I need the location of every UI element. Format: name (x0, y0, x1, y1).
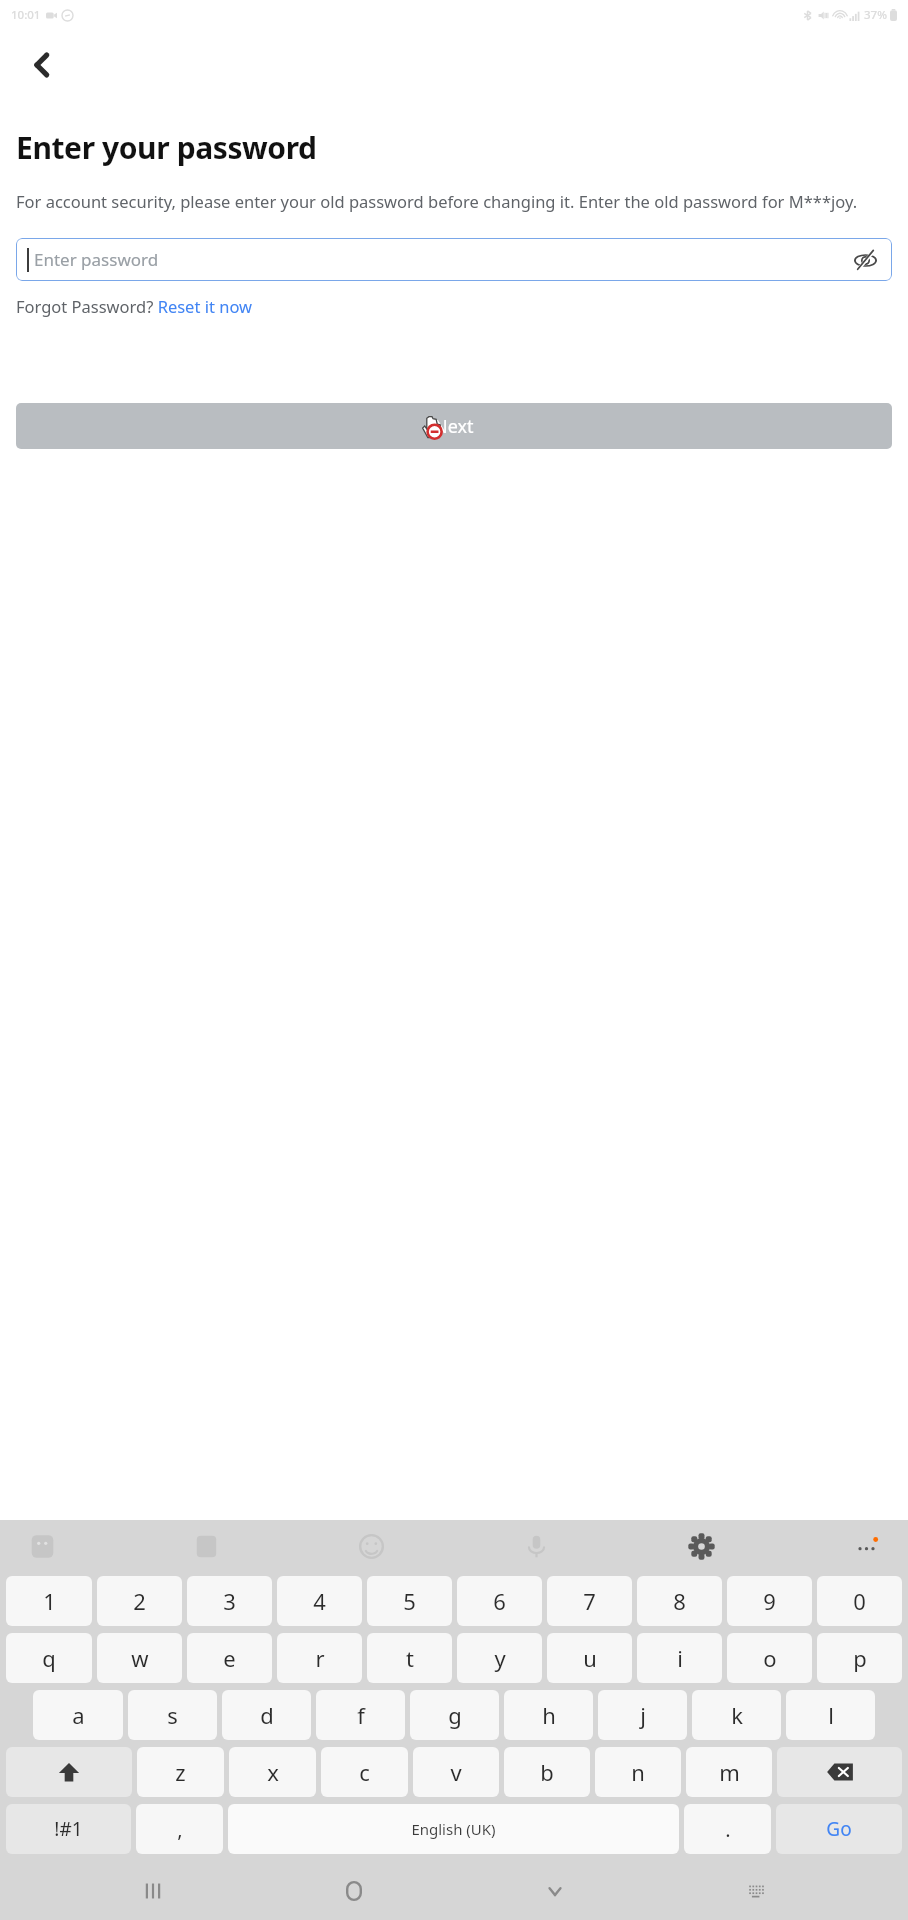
staticText: 3 (223, 1586, 236, 1616)
button[interactable]: h (504, 1690, 593, 1740)
button[interactable]: Home (327, 1864, 381, 1918)
staticText: e (223, 1643, 236, 1673)
staticText: Next (434, 414, 474, 439)
staticText: y (494, 1643, 506, 1673)
button[interactable]: 2 (97, 1576, 182, 1626)
button[interactable]: g (410, 1690, 499, 1740)
staticText: 2 (133, 1586, 146, 1616)
button[interactable]: k (692, 1690, 781, 1740)
button[interactable]: 4 (277, 1576, 362, 1626)
staticText: 7 (583, 1586, 596, 1616)
button[interactable]: v (413, 1747, 499, 1797)
button[interactable]: More options (846, 1526, 886, 1566)
button[interactable]: GIF (186, 1526, 226, 1566)
staticText: 5 (403, 1586, 416, 1616)
button[interactable]: . (684, 1804, 771, 1854)
staticText: u (583, 1643, 597, 1673)
button[interactable]: i (637, 1633, 722, 1683)
button[interactable]: English (UK) (228, 1804, 679, 1854)
button[interactable]: s (128, 1690, 217, 1740)
button[interactable]: Hide keyboard (528, 1864, 582, 1918)
button[interactable]: Backspace (777, 1747, 902, 1797)
button[interactable]: Change keyboard (729, 1864, 783, 1918)
button[interactable]: , (136, 1804, 223, 1854)
staticText: w (131, 1643, 149, 1673)
staticText: g (448, 1700, 462, 1730)
staticText: q (42, 1643, 56, 1673)
staticText: d (260, 1700, 274, 1730)
staticText: , (177, 1816, 183, 1843)
button[interactable]: Voice input (516, 1526, 556, 1566)
button[interactable]: w (97, 1633, 182, 1683)
staticText: o (763, 1643, 777, 1673)
button[interactable]: u (547, 1633, 632, 1683)
staticText: 37% (864, 7, 887, 23)
button[interactable]: 0 (817, 1576, 902, 1626)
staticText: . (725, 1816, 731, 1843)
button[interactable]: Emoji (351, 1526, 391, 1566)
button[interactable]: t (367, 1633, 452, 1683)
button[interactable]: 9 (727, 1576, 812, 1626)
button[interactable]: 3 (187, 1576, 272, 1626)
staticText: 0 (853, 1586, 866, 1616)
button[interactable]: q (6, 1633, 92, 1683)
staticText: f (357, 1700, 365, 1730)
button[interactable]: Recent apps (126, 1864, 180, 1918)
button[interactable]: Go (776, 1804, 902, 1854)
staticText: English (UK) (411, 1819, 496, 1839)
button[interactable]: 7 (547, 1576, 632, 1626)
button[interactable]: m (686, 1747, 772, 1797)
staticText: 1 (43, 1586, 56, 1616)
button[interactable]: f (316, 1690, 405, 1740)
staticText: 9 (763, 1586, 776, 1616)
staticText: s (167, 1700, 178, 1730)
button[interactable]: x (229, 1747, 316, 1797)
staticText: n (631, 1757, 645, 1787)
staticText: Go (826, 1816, 852, 1842)
button[interactable]: 1 (6, 1576, 92, 1626)
staticText: Forgot Password? Reset it now (16, 295, 252, 317)
button[interactable]: l (786, 1690, 875, 1740)
button[interactable]: o (727, 1633, 812, 1683)
staticText: 8 (673, 1586, 686, 1616)
button[interactable]: Back (18, 41, 66, 89)
button[interactable]: !#1 (6, 1804, 131, 1854)
staticText: h (542, 1700, 556, 1730)
staticText: a (72, 1700, 85, 1730)
button[interactable]: b (504, 1747, 590, 1797)
button[interactable]: Shift (6, 1747, 132, 1797)
staticText: p (853, 1643, 867, 1673)
button[interactable]: a (33, 1690, 123, 1740)
button[interactable]: Enter password (16, 238, 892, 281)
button[interactable]: p (817, 1633, 902, 1683)
staticText: 6 (493, 1586, 506, 1616)
button[interactable]: 8 (637, 1576, 722, 1626)
button[interactable]: n (595, 1747, 681, 1797)
staticText: t (406, 1643, 414, 1673)
staticText: k (731, 1700, 743, 1730)
staticText: r (315, 1643, 325, 1673)
button[interactable]: 6 (457, 1576, 542, 1626)
button[interactable]: 5 (367, 1576, 452, 1626)
button[interactable]: j (598, 1690, 687, 1740)
staticText: Enter your password (16, 127, 317, 168)
staticText: v (450, 1757, 462, 1787)
button[interactable]: r (277, 1633, 362, 1683)
staticText: !#1 (54, 1816, 83, 1842)
button[interactable]: Settings (681, 1526, 721, 1566)
button[interactable]: Next (16, 403, 892, 449)
staticText: j (640, 1700, 646, 1730)
button[interactable]: Stickers (22, 1526, 62, 1566)
staticText: For account security, please enter your … (16, 190, 892, 212)
button[interactable]: c (321, 1747, 408, 1797)
button[interactable]: d (222, 1690, 311, 1740)
button[interactable]: e (187, 1633, 272, 1683)
button[interactable]: z (137, 1747, 224, 1797)
button[interactable]: y (457, 1633, 542, 1683)
button[interactable]: Show password (850, 245, 880, 275)
staticText: b (540, 1757, 554, 1787)
staticText: i (677, 1643, 683, 1673)
button[interactable]: Forgot Password? Reset it now (16, 295, 252, 317)
staticText: l (828, 1700, 834, 1730)
staticText: z (175, 1757, 186, 1787)
